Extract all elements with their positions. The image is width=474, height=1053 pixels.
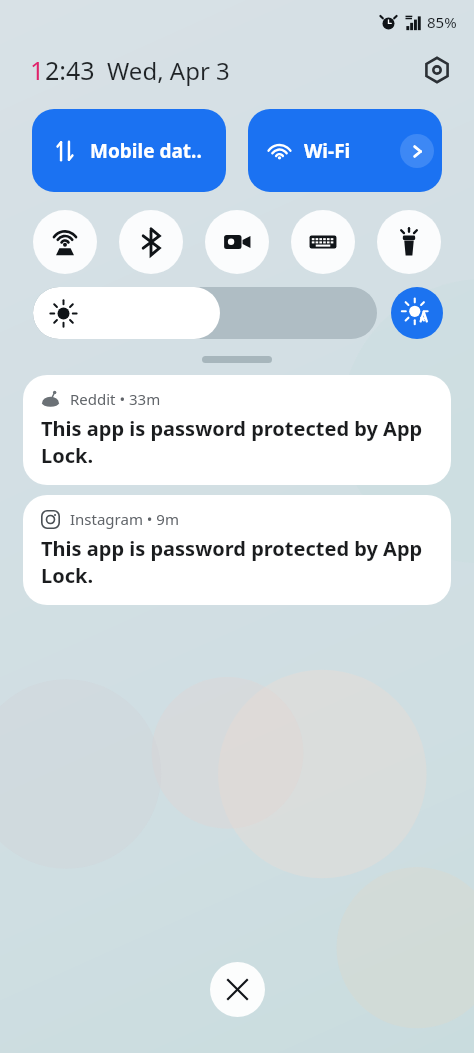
- button[interactable]: Auto brightness: [391, 287, 443, 339]
- button[interactable]: Reddit • 33m: [23, 375, 451, 485]
- staticText: Instagram • 9m: [70, 509, 179, 529]
- staticText: Wed, Apr 3: [107, 54, 230, 87]
- button[interactable]: Wi-Fi: [248, 109, 442, 192]
- button[interactable]: Close: [210, 962, 265, 1017]
- staticText: Mobile dat..: [90, 138, 202, 164]
- staticText: 85%: [427, 12, 457, 32]
- button[interactable]: Keyboard: [291, 210, 355, 274]
- button[interactable]: Brightness: [33, 287, 377, 339]
- staticText: 2:43: [45, 53, 95, 87]
- button[interactable]: Expand: [202, 356, 272, 363]
- button[interactable]: Settings: [420, 53, 454, 87]
- button[interactable]: Mobile dat..: [32, 109, 226, 192]
- button[interactable]: Hotspot: [33, 210, 97, 274]
- staticText: Wi-Fi: [304, 138, 351, 164]
- staticText: 1: [30, 53, 45, 87]
- button[interactable]: Wi-Fi settings: [400, 134, 434, 168]
- staticText: Reddit • 33m: [70, 389, 161, 409]
- button[interactable]: Screen recorder: [205, 210, 269, 274]
- staticText: This app is password protected by App Lo…: [41, 415, 433, 469]
- staticText: This app is password protected by App Lo…: [41, 535, 433, 589]
- button[interactable]: Instagram • 9m: [23, 495, 451, 605]
- button[interactable]: Flashlight: [377, 210, 441, 274]
- button[interactable]: Bluetooth: [119, 210, 183, 274]
